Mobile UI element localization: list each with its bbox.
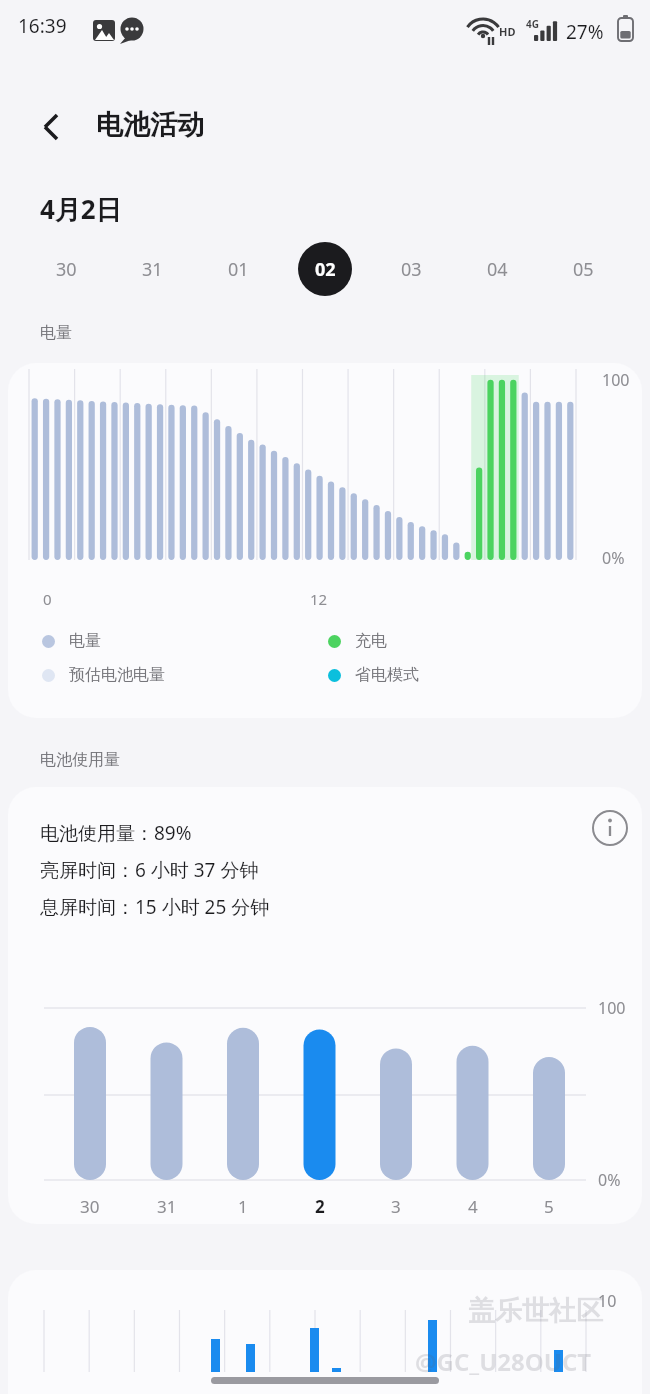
button[interactable]: 02 (298, 242, 352, 296)
button[interactable]: Information (585, 803, 635, 853)
staticText: 电池活动 (96, 108, 204, 142)
staticText: 27% (566, 19, 604, 45)
button[interactable]: 31 (145, 1191, 189, 1221)
button[interactable]: 03 (384, 242, 438, 296)
button[interactable]: 2 (298, 1191, 342, 1221)
staticText: 0% (598, 1169, 621, 1191)
staticText: 亮屏时间：6 小时 37 分钟 (40, 857, 259, 883)
staticText: 0% (602, 547, 625, 569)
button[interactable]: Back (24, 100, 78, 154)
staticText: 100 (602, 369, 630, 391)
staticText: 03 (401, 257, 422, 282)
staticText: 电量 (69, 631, 101, 651)
staticText: 充电 (355, 631, 387, 651)
button[interactable]: 05 (556, 242, 610, 296)
staticText: 2 (315, 1195, 325, 1218)
button[interactable]: 4 (451, 1191, 495, 1221)
button[interactable]: 1 (221, 1191, 265, 1221)
button[interactable]: 04 (470, 242, 524, 296)
staticText: HD (499, 24, 516, 39)
button[interactable]: 100 (8, 363, 642, 718)
button[interactable]: 5 (527, 1191, 571, 1221)
button[interactable]: 3 (374, 1191, 418, 1221)
button[interactable]: 省电模式 (328, 665, 419, 685)
staticText: 5 (544, 1195, 554, 1218)
staticText: 12 (310, 589, 328, 609)
staticText: 100 (598, 997, 626, 1019)
button[interactable]: 30 (68, 1191, 112, 1221)
button[interactable]: 30 (39, 242, 93, 296)
staticText: 31 (157, 1195, 177, 1218)
staticText: 3 (391, 1195, 401, 1218)
button[interactable]: 10 (8, 1270, 642, 1394)
staticText: 息屏时间：15 小时 25 分钟 (40, 894, 270, 920)
button[interactable]: 电池使用量：89% (8, 787, 642, 1224)
button[interactable]: 充电 (328, 631, 387, 651)
staticText: 电池使用量 (40, 750, 120, 770)
staticText: 4G (526, 17, 539, 31)
staticText: 4 (468, 1195, 478, 1218)
button[interactable]: 预估电池电量 (42, 665, 165, 685)
staticText: 4月2日 (40, 191, 122, 227)
staticText: 02 (315, 257, 336, 282)
staticText: 0 (43, 589, 52, 609)
staticText: 盖乐世社区 (468, 1294, 603, 1328)
button[interactable]: 01 (211, 242, 265, 296)
staticText: 预估电池电量 (69, 665, 165, 685)
staticText: 30 (80, 1195, 100, 1218)
staticText: 30 (56, 257, 77, 282)
staticText: 31 (142, 257, 163, 282)
staticText: 10 (598, 1290, 617, 1312)
button[interactable]: 31 (125, 242, 179, 296)
staticText: 01 (228, 257, 249, 282)
staticText: 电量 (40, 323, 72, 343)
staticText: 省电模式 (355, 665, 419, 685)
button[interactable]: 电量 (42, 631, 101, 651)
staticText: 1 (238, 1195, 248, 1218)
staticText: 16:39 (18, 13, 67, 39)
staticText: 05 (573, 257, 594, 282)
staticText: 电池使用量：89% (40, 820, 192, 846)
staticText: 04 (487, 257, 508, 282)
staticText: @GC_U28OUCT (415, 1345, 592, 1378)
